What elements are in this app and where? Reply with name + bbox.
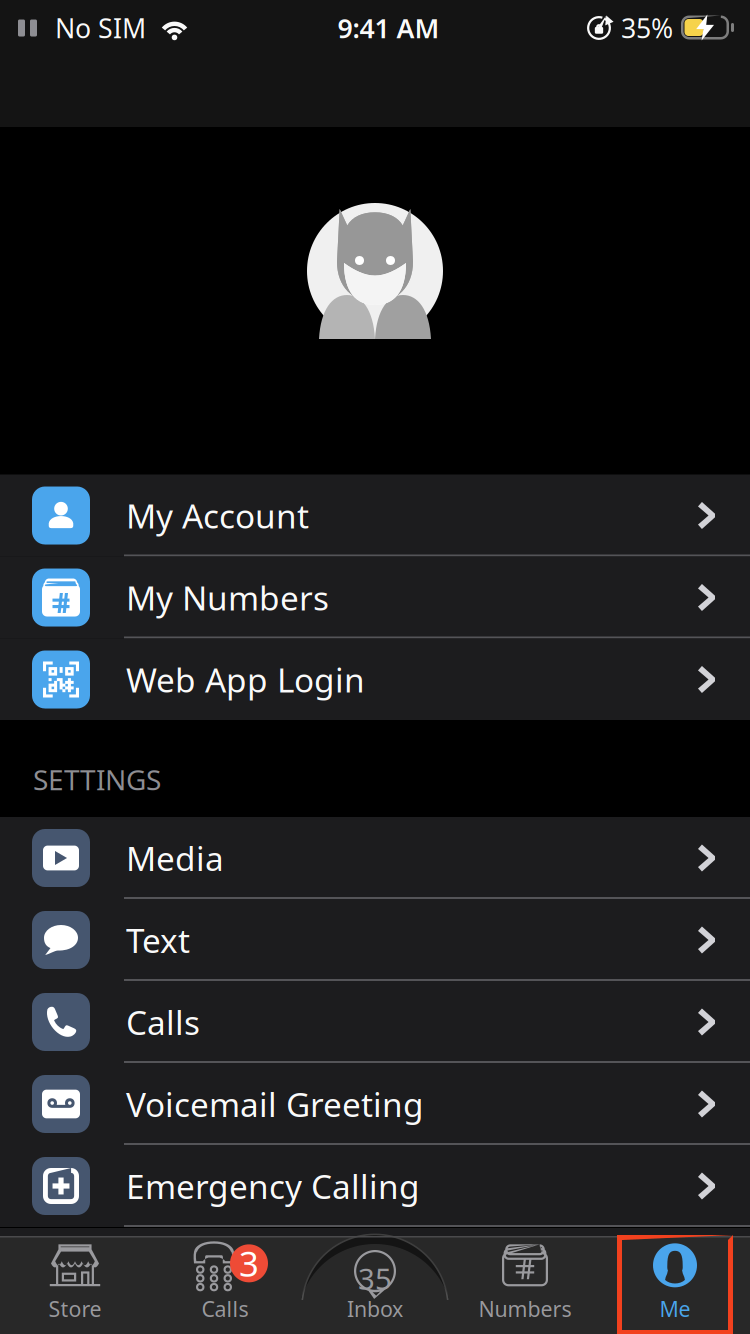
staticText: Calls	[126, 1000, 200, 1044]
staticText: Me	[659, 1295, 690, 1323]
staticText: Text	[126, 918, 190, 962]
staticText: Media	[126, 836, 224, 880]
staticText: Store	[48, 1295, 101, 1323]
staticText: Numbers	[478, 1295, 571, 1323]
button[interactable]: 3	[150, 1236, 300, 1334]
button[interactable]: Store	[0, 1236, 150, 1334]
button[interactable]: My Account	[0, 474, 750, 556]
staticText: 35%	[621, 10, 673, 46]
staticText: 35	[358, 1259, 392, 1298]
button[interactable]: Calls	[0, 981, 750, 1063]
staticText: Emergency Calling	[126, 1164, 420, 1208]
staticText: SETTINGS	[33, 761, 161, 798]
button[interactable]: Voicemail Greeting	[0, 1063, 750, 1145]
button[interactable]: Emergency Calling	[0, 1145, 750, 1227]
button[interactable]: Numbers	[450, 1236, 600, 1334]
button[interactable]: Web App Login	[0, 638, 750, 720]
staticText: Calls	[201, 1295, 248, 1323]
button[interactable]: Media	[0, 817, 750, 899]
button[interactable]: My Numbers	[0, 556, 750, 638]
staticText: My Account	[126, 493, 309, 538]
button[interactable]: Text	[0, 899, 750, 981]
staticText: Voicemail Greeting	[126, 1082, 424, 1126]
staticText: My Numbers	[126, 575, 329, 620]
button[interactable]: Me	[600, 1236, 750, 1334]
staticText: Web App Login	[126, 657, 365, 702]
staticText: Inbox	[347, 1295, 403, 1323]
staticText: No SIM	[55, 10, 146, 46]
button[interactable]: 35	[300, 1236, 450, 1334]
staticText: 9:41 AM	[337, 10, 439, 46]
staticText: 3	[239, 1240, 259, 1286]
